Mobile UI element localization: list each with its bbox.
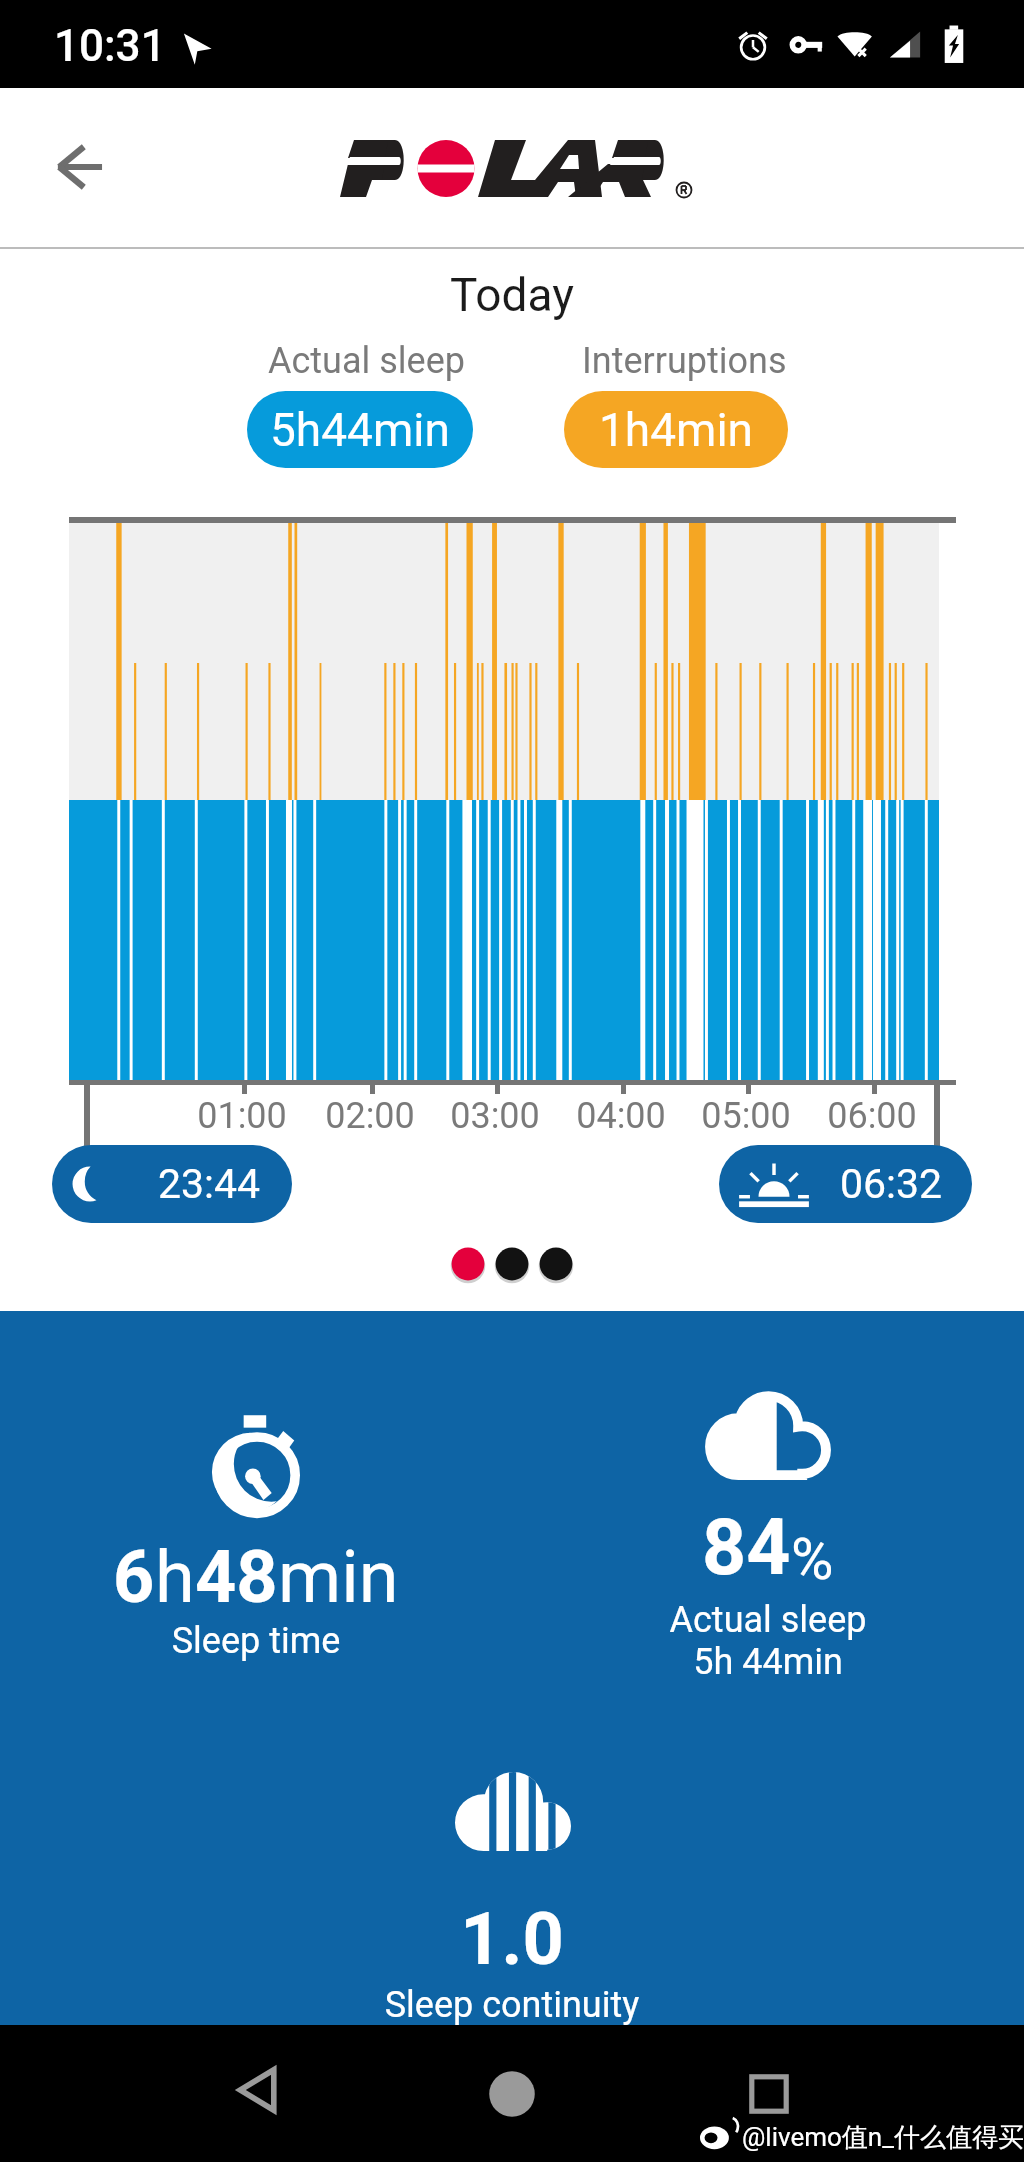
button[interactable]: 1h4min — [564, 391, 788, 468]
staticText: 03:00 — [425, 1095, 565, 1137]
staticText: 5h44min — [270, 403, 450, 457]
staticText: 04:00 — [551, 1095, 691, 1137]
staticText: 05:00 — [676, 1095, 816, 1137]
button[interactable]: 06:32 — [719, 1145, 972, 1223]
staticText: 02:00 — [300, 1095, 440, 1137]
staticText: 06:32 — [840, 1160, 943, 1208]
staticText: h — [155, 1535, 195, 1619]
button[interactable]: Home — [471, 2053, 553, 2135]
staticText: 10:31 — [54, 20, 166, 72]
staticText: 23:44 — [158, 1160, 261, 1208]
button[interactable]: 23:44 — [52, 1145, 292, 1223]
button[interactable]: Back — [34, 122, 124, 212]
staticText: Actual sleep — [268, 340, 465, 382]
staticText: 48 — [195, 1535, 278, 1619]
staticText: Actual sleep — [628, 1599, 908, 1641]
staticText: % — [791, 1525, 834, 1593]
staticText: Interruptions — [582, 340, 787, 382]
staticText: Sleep continuity — [0, 1984, 1024, 2026]
staticText: 1h4min — [599, 403, 753, 457]
staticText: 06:00 — [802, 1095, 942, 1137]
button[interactable]: 5h44min — [247, 391, 473, 468]
staticText: Sleep time — [116, 1620, 396, 1662]
staticText: 01:00 — [172, 1095, 312, 1137]
staticText: 5h 44min — [628, 1641, 908, 1683]
staticText: 84 — [702, 1503, 791, 1593]
button[interactable]: Back — [216, 2049, 298, 2131]
button[interactable]: Recent apps — [728, 2053, 810, 2135]
staticText: min — [278, 1535, 399, 1619]
staticText: @livemo值n_什么值得买 — [742, 2121, 1024, 2154]
staticText: 6 — [113, 1535, 155, 1619]
staticText: Today — [0, 268, 1024, 322]
staticText: 1.0 — [0, 1897, 1024, 1981]
